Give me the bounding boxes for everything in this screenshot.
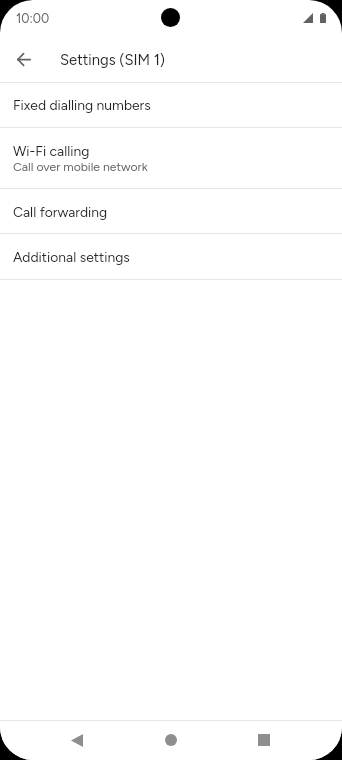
button[interactable]: Home xyxy=(153,722,189,758)
staticText: Wi-Fi calling xyxy=(13,143,90,160)
staticText: Fixed dialling numbers xyxy=(13,97,151,114)
button[interactable]: Recent apps xyxy=(246,722,282,758)
staticText: Additional settings xyxy=(13,249,130,266)
button[interactable]: Fixed dialling numbers xyxy=(0,83,342,128)
button[interactable]: Back xyxy=(6,41,42,77)
button[interactable]: Additional settings xyxy=(0,234,342,280)
button[interactable]: Call forwarding xyxy=(0,189,342,234)
button[interactable]: Wi-Fi calling xyxy=(0,128,342,189)
button[interactable]: Back xyxy=(59,722,95,758)
staticText: Call over mobile network xyxy=(13,159,148,174)
staticText: 10:00 xyxy=(16,11,50,26)
staticText: Call forwarding xyxy=(13,204,108,221)
staticText: Settings (SIM 1) xyxy=(60,51,166,69)
